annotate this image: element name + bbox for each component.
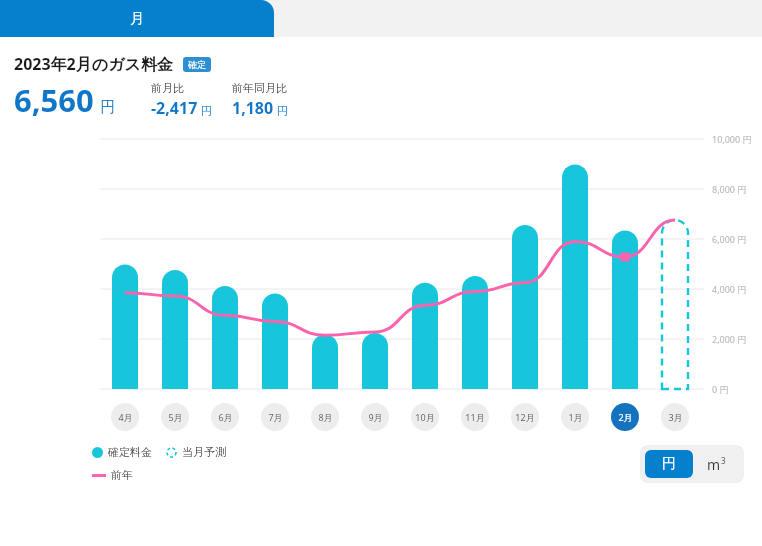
button[interactable]: 2月	[611, 403, 639, 431]
staticText: -2,417	[151, 97, 198, 119]
staticText: 2,000 円	[712, 333, 747, 345]
staticText: 2023年2月のガス料金	[14, 53, 173, 75]
staticText: 6月	[218, 411, 233, 423]
staticText: 8,000 円	[712, 183, 747, 195]
button[interactable]: 7月	[261, 403, 289, 431]
staticText: 確定	[188, 59, 206, 70]
staticText: 1月	[568, 411, 583, 423]
staticText: 10月	[415, 411, 435, 423]
staticText: 円	[201, 104, 212, 118]
button[interactable]: 9月	[361, 403, 389, 431]
button[interactable]: 月	[0, 0, 274, 37]
staticText: 11月	[465, 411, 485, 423]
button[interactable]: 10月	[411, 403, 439, 431]
staticText: 円	[100, 98, 115, 117]
staticText: 確定料金	[108, 445, 152, 459]
staticText: 1,180	[232, 97, 274, 119]
staticText: 4,000 円	[712, 283, 747, 295]
staticText: 前年同月比	[232, 81, 287, 95]
button[interactable]: m	[693, 450, 739, 478]
staticText: 前年	[111, 468, 133, 482]
button[interactable]: 5月	[161, 403, 189, 431]
staticText: 9月	[368, 411, 383, 423]
staticText: 10,000 円	[712, 133, 752, 145]
button[interactable]: 8月	[311, 403, 339, 431]
button[interactable]: 4月	[111, 403, 139, 431]
button[interactable]: 円	[645, 450, 693, 478]
staticText: 7月	[268, 411, 283, 423]
staticText: 当月予測	[182, 445, 226, 459]
button[interactable]: 12月	[511, 403, 539, 431]
staticText: 円	[662, 455, 676, 473]
staticText: 6,560	[14, 79, 94, 121]
staticText: 12月	[515, 411, 535, 423]
button[interactable]: 確定	[188, 59, 206, 70]
button[interactable]: 3月	[661, 403, 689, 431]
staticText: 5月	[168, 411, 183, 423]
staticText: 円	[277, 104, 288, 118]
staticText: m	[707, 455, 721, 474]
staticText: 前月比	[151, 81, 184, 95]
staticText: 6,000 円	[712, 233, 747, 245]
button[interactable]: 6月	[211, 403, 239, 431]
staticText: 3	[721, 455, 726, 466]
staticText: 月	[130, 10, 144, 28]
staticText: 4月	[118, 411, 133, 423]
button[interactable]: 1月	[561, 403, 589, 431]
staticText: 2月	[618, 411, 633, 423]
staticText: 0 円	[712, 383, 729, 395]
staticText: 8月	[318, 411, 333, 423]
staticText: 3月	[668, 411, 683, 423]
button[interactable]: 11月	[461, 403, 489, 431]
